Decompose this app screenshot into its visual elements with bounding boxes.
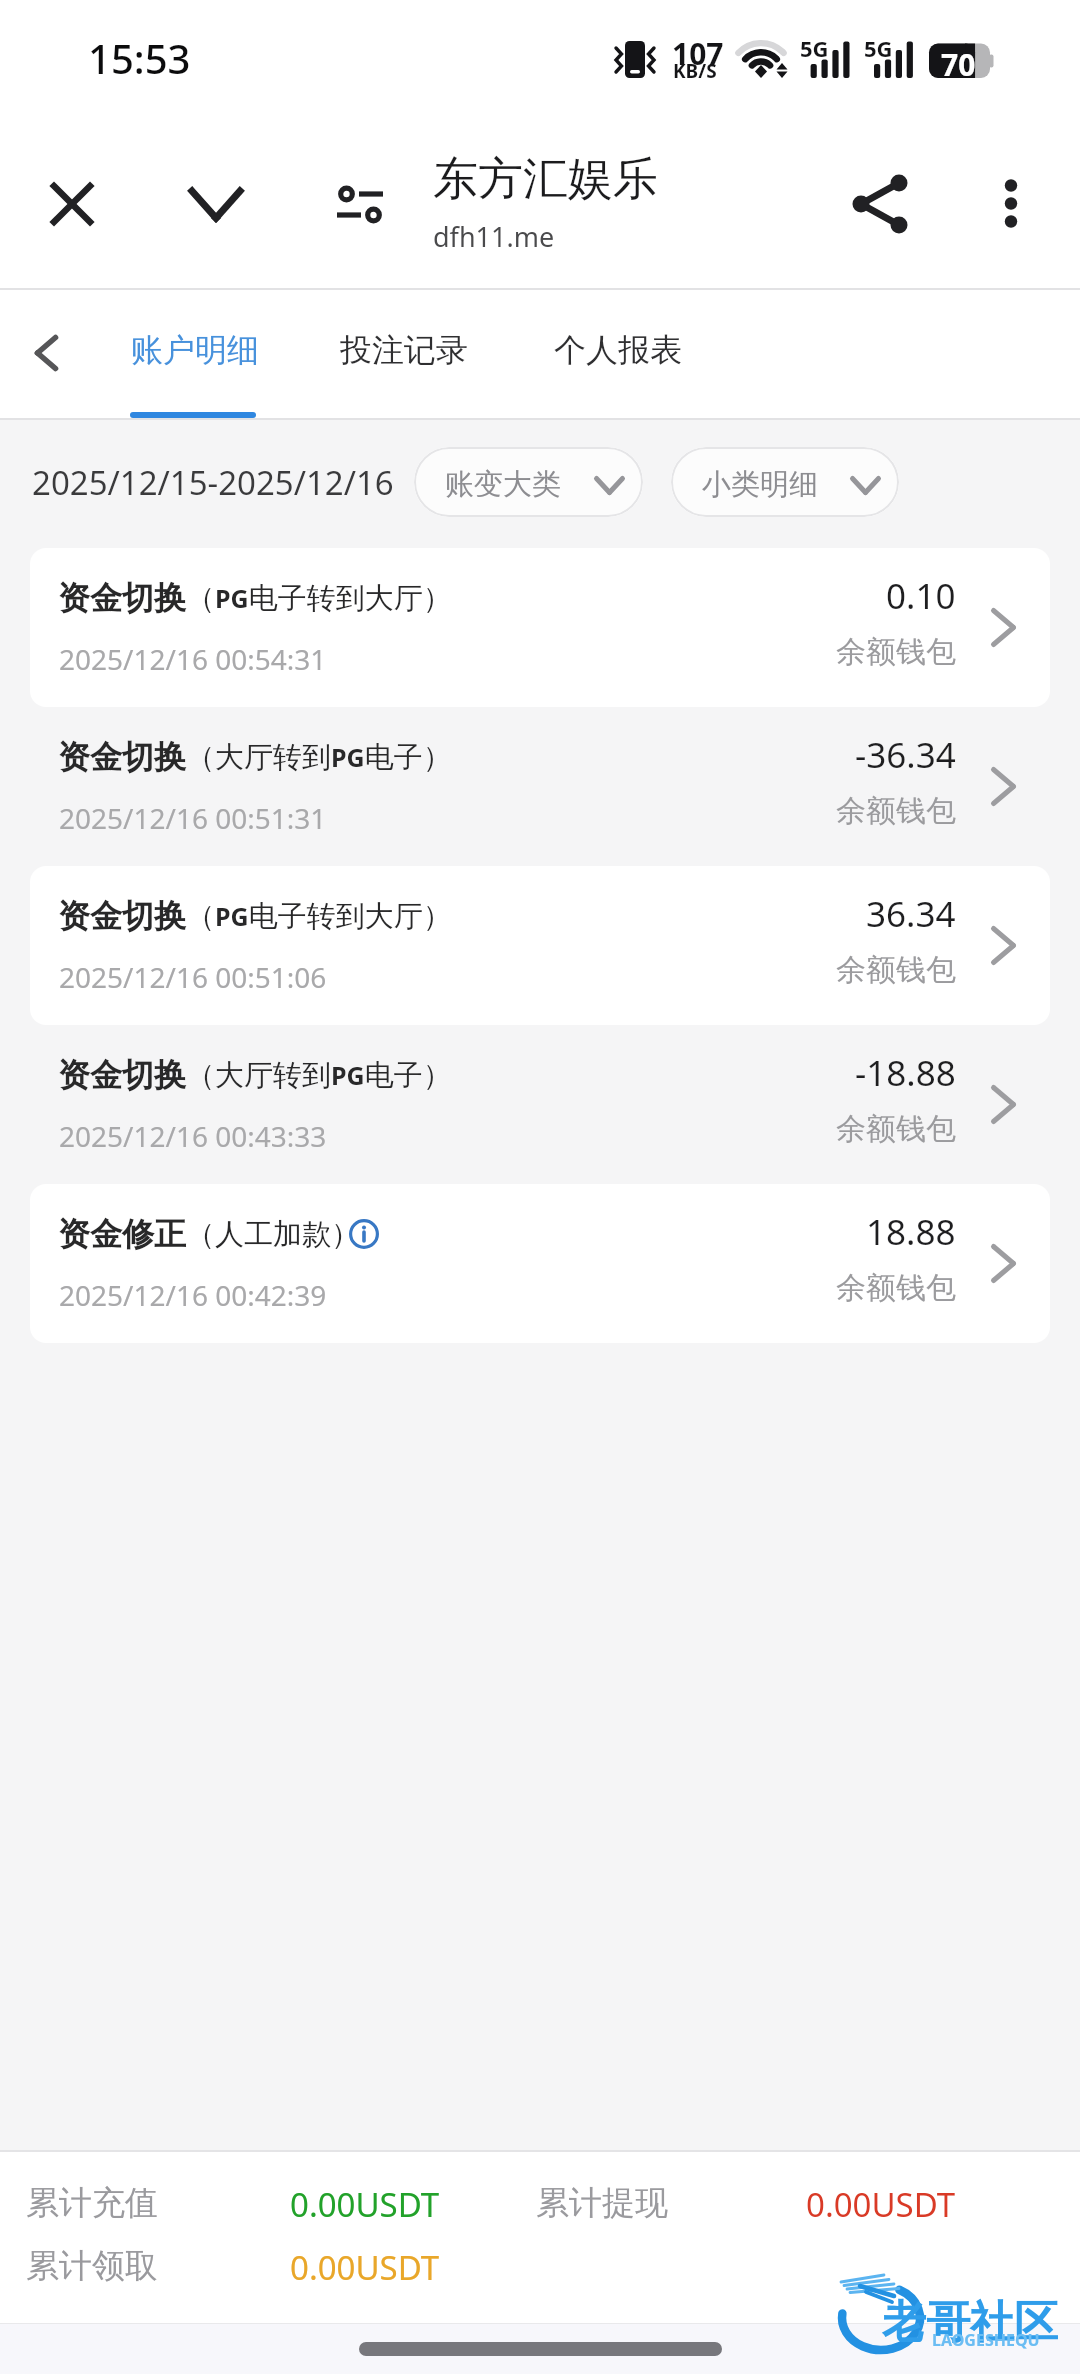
staticText: 累计充值 <box>26 2182 158 2224</box>
staticText: 投注记录 <box>340 330 468 370</box>
staticText: 资金切换 <box>58 896 186 936</box>
staticText: 70 <box>941 44 976 85</box>
staticText: 5G <box>800 33 829 63</box>
button[interactable]: 小类明细 <box>671 447 899 517</box>
staticText: （PG电子转到大厅） <box>186 580 452 617</box>
staticText: 小类明细 <box>702 466 818 503</box>
staticText: 余额钱包 <box>836 792 956 830</box>
staticText: 余额钱包 <box>836 1110 956 1148</box>
button[interactable]: 资金切换 <box>0 1025 1080 1184</box>
button[interactable]: Share <box>832 154 932 254</box>
button[interactable]: 账变大类 <box>414 447 643 517</box>
button[interactable]: 个人报表 <box>528 290 706 418</box>
staticText: 个人报表 <box>554 330 682 370</box>
staticText: 累计提现 <box>536 2182 668 2224</box>
staticText: 资金切换 <box>58 1055 186 1095</box>
staticText: 2025/12/16 00:54:31 <box>59 640 327 678</box>
staticText: 107 <box>672 33 724 74</box>
staticText: 0.00USDT <box>806 2182 956 2227</box>
button[interactable]: Close <box>22 154 122 254</box>
staticText: 东方汇娱乐 <box>433 151 658 208</box>
staticText: （大厅转到PG电子） <box>186 739 452 776</box>
staticText: KB/S <box>673 58 717 84</box>
staticText: （人工加款） <box>186 1216 360 1253</box>
staticText: （大厅转到PG电子） <box>186 1057 452 1094</box>
button[interactable]: 资金切换 <box>30 866 1050 1025</box>
button[interactable]: Collapse <box>166 154 266 254</box>
staticText: 2025/12/16 00:51:06 <box>59 958 327 996</box>
staticText: 2025/12/16 00:51:31 <box>59 799 327 837</box>
staticText: 余额钱包 <box>836 633 956 671</box>
staticText: 余额钱包 <box>836 1269 956 1307</box>
staticText: 账变大类 <box>445 466 561 503</box>
staticText: 2025/12/16 00:43:33 <box>59 1117 327 1155</box>
staticText: 资金修正 <box>58 1214 186 1254</box>
button[interactable]: 2025/12/15-2025/12/16 <box>24 447 400 517</box>
other: Details <box>349 1219 379 1249</box>
staticText: 2025/12/16 00:42:39 <box>59 1276 327 1314</box>
staticText: 18.88 <box>866 1208 956 1256</box>
button[interactable]: Back <box>0 290 93 418</box>
staticText: 0.10 <box>886 572 956 620</box>
staticText: 0.00USDT <box>290 2182 440 2227</box>
staticText: 2025/12/15-2025/12/16 <box>32 460 394 505</box>
staticText: （PG电子转到大厅） <box>186 898 452 935</box>
staticText: 资金切换 <box>58 578 186 618</box>
staticText: 36.34 <box>866 890 956 938</box>
button[interactable]: 投注记录 <box>314 290 492 418</box>
staticText: 账户明细 <box>131 330 259 370</box>
staticText: 老哥社区 <box>882 2295 1058 2350</box>
staticText: dfh11.me <box>433 218 555 255</box>
staticText: -36.34 <box>855 731 956 779</box>
staticText: -18.88 <box>855 1049 956 1097</box>
staticText: 余额钱包 <box>836 951 956 989</box>
staticText: 累计领取 <box>26 2245 158 2287</box>
staticText: 15:53 <box>88 31 191 85</box>
button[interactable]: 资金切换 <box>30 548 1050 707</box>
button[interactable]: 账户明细 <box>105 290 283 418</box>
button[interactable]: 资金切换 <box>0 707 1080 866</box>
staticText: 5G <box>864 33 893 63</box>
button[interactable]: Page info <box>310 154 410 254</box>
staticText: 0.00USDT <box>290 2245 440 2290</box>
button[interactable]: 资金修正 <box>30 1184 1050 1343</box>
staticText: 资金切换 <box>58 737 186 777</box>
button[interactable]: More options <box>961 154 1061 254</box>
staticText: LAOGESHEQU <box>932 2329 1040 2351</box>
